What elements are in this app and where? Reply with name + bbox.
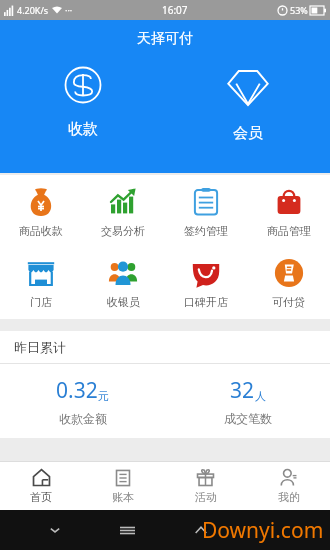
staticText: 天择可付 xyxy=(137,30,193,48)
staticText: 成交笔数 xyxy=(224,411,272,426)
staticText: 元 xyxy=(98,389,109,403)
staticText: 昨日累计 xyxy=(14,339,66,355)
button[interactable]: 首页 xyxy=(0,462,82,510)
button[interactable]: 收款 xyxy=(0,64,165,141)
staticText: 人 xyxy=(255,389,266,403)
staticText: 口碑开店 xyxy=(184,295,228,309)
staticText: 门店 xyxy=(30,295,52,309)
button[interactable]: 活动 xyxy=(164,462,247,510)
other: 收款 xyxy=(64,66,102,104)
staticText: 4.20K/s xyxy=(17,4,49,16)
staticText: 53% xyxy=(290,4,308,16)
other: 会员 xyxy=(227,66,269,108)
button[interactable]: 交易分析 xyxy=(82,181,164,242)
staticText: 会员 xyxy=(233,124,263,143)
button[interactable]: 32 xyxy=(165,376,330,426)
staticText: 收款 xyxy=(68,120,98,139)
button[interactable]: 会员 xyxy=(165,64,330,145)
other: Back xyxy=(49,524,61,536)
staticText: 交易分析 xyxy=(101,224,145,238)
staticText: ··· xyxy=(65,4,73,16)
staticText: 商品收款 xyxy=(19,224,63,238)
other: Home xyxy=(194,523,208,537)
staticText: 首页 xyxy=(30,490,52,504)
button[interactable]: 门店 xyxy=(0,252,82,313)
button[interactable]: 签约管理 xyxy=(164,181,247,242)
staticText: 收款金额 xyxy=(59,411,107,426)
button[interactable]: 商品收款 xyxy=(0,181,82,242)
staticText: Downyi.com xyxy=(202,516,324,545)
button[interactable]: 口碑开店 xyxy=(164,252,247,313)
staticText: 可付贷 xyxy=(272,295,305,309)
button[interactable]: 商品管理 xyxy=(247,181,330,242)
button[interactable]: 收银员 xyxy=(82,252,164,313)
button[interactable]: 账本 xyxy=(82,462,164,510)
button[interactable]: 0.32 xyxy=(0,376,165,426)
staticText: 活动 xyxy=(195,490,217,504)
staticText: 32 xyxy=(230,376,255,405)
staticText: 签约管理 xyxy=(184,224,228,238)
staticText: 收银员 xyxy=(107,295,140,309)
staticText: 16:07 xyxy=(162,3,188,17)
button[interactable]: 可付贷 xyxy=(247,252,330,313)
staticText: 0.32 xyxy=(56,376,98,405)
button[interactable]: 我的 xyxy=(247,462,330,510)
staticText: 商品管理 xyxy=(267,224,311,238)
other: Menu xyxy=(120,523,135,538)
staticText: 我的 xyxy=(278,490,300,504)
staticText: 账本 xyxy=(112,490,134,504)
